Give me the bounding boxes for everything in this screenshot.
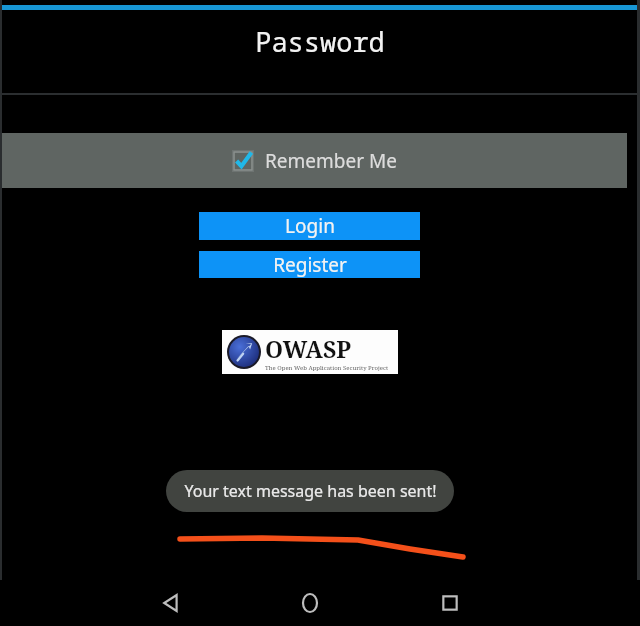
button[interactable]: OWASP logo	[222, 330, 398, 374]
button[interactable]: Home	[287, 580, 333, 626]
staticText: Your text message has been sent!	[184, 480, 437, 502]
staticText: Register	[273, 252, 347, 278]
button[interactable]: Register	[199, 251, 420, 278]
staticText: Password	[255, 23, 385, 60]
button[interactable]: Login	[199, 212, 420, 240]
staticText: Remember Me	[265, 148, 397, 174]
staticText: OWASP	[265, 333, 351, 364]
button[interactable]: Remember Me	[2, 133, 627, 188]
button[interactable]: Recent apps	[427, 580, 473, 626]
staticText: Login	[285, 213, 335, 239]
staticText: The Open Web Application Security Projec…	[265, 364, 389, 372]
button[interactable]: Back	[148, 580, 194, 626]
